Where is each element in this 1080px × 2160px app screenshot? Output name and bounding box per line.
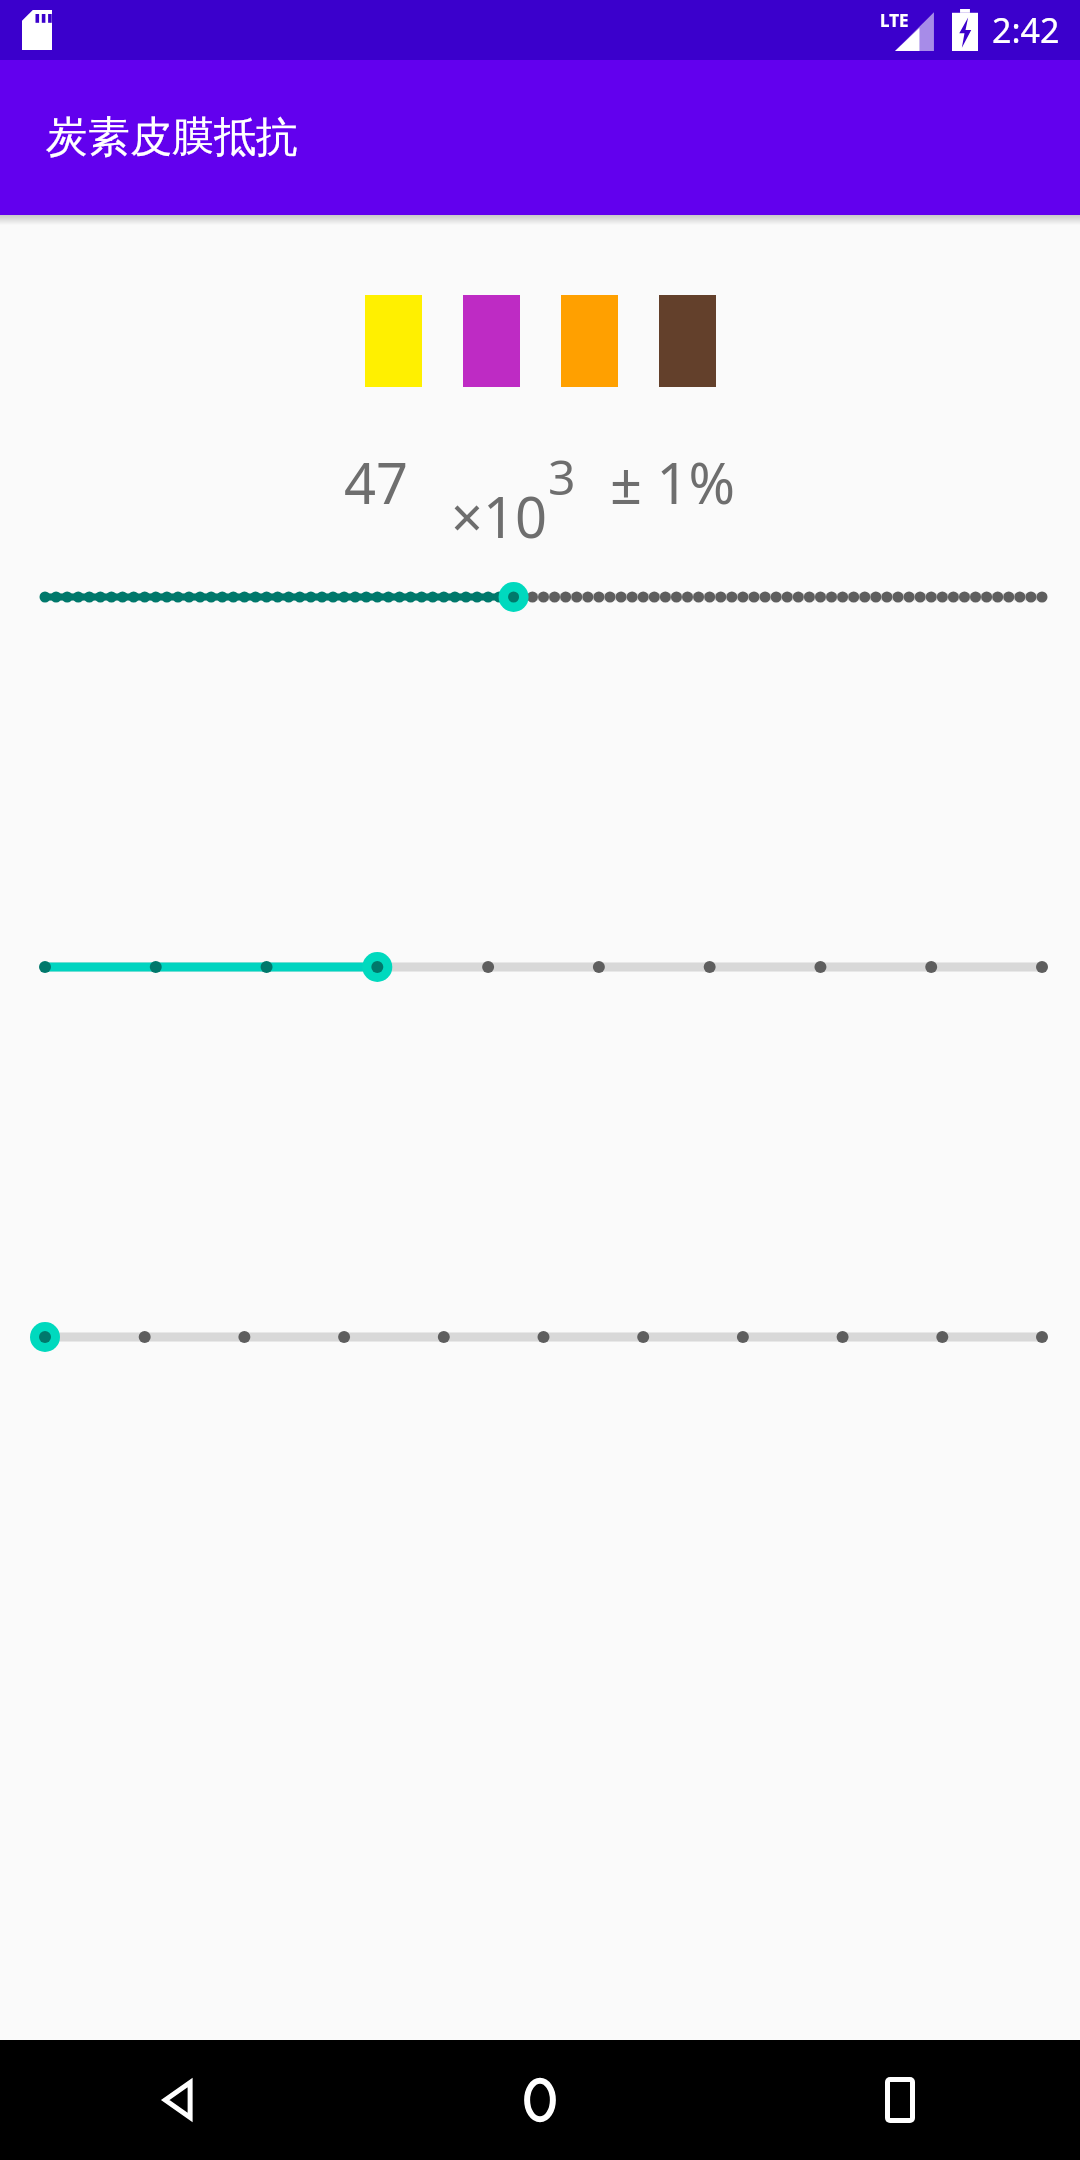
staticText: LTE [880,9,909,32]
button[interactable]: Home [360,2040,720,2160]
button[interactable]: Tolerance slider [0,1292,1080,1662]
staticText: 2:42 [992,7,1060,53]
staticText: 3 [548,444,576,509]
button[interactable]: Back [0,2040,360,2160]
staticText: ×10 [451,478,548,554]
button[interactable]: First digit slider [0,552,1080,922]
staticText: ± 1% [610,444,736,520]
staticText: 炭素皮膜抵抗 [46,111,298,164]
button[interactable]: Recent apps [720,2040,1080,2160]
button[interactable]: Multiplier slider [0,922,1080,1292]
staticText: 47 [344,444,409,520]
